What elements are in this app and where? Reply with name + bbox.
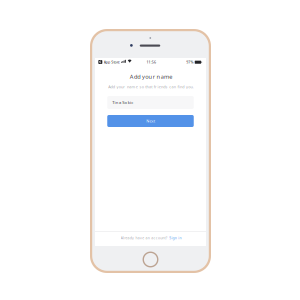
staticText: Add your name so that friends can find y… (108, 84, 194, 89)
staticText: 11:56 (146, 59, 156, 64)
staticText: 97% (186, 60, 193, 65)
staticText: Add your name (130, 73, 172, 80)
staticText: Already have an account? (121, 236, 167, 240)
staticText: Next (146, 118, 155, 124)
staticText: App Store (104, 59, 120, 64)
button[interactable]: Sign in (169, 236, 181, 240)
staticText: Sign in (169, 236, 181, 240)
staticText: Tina Sokic (112, 100, 133, 105)
button[interactable]: Next (107, 115, 194, 127)
button[interactable]: App Store (98, 59, 120, 64)
button[interactable]: Tina Sokic (107, 96, 194, 109)
